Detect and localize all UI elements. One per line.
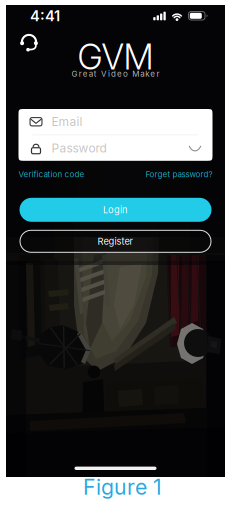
staticText: Login bbox=[103, 204, 128, 215]
button[interactable]: Verification code bbox=[18, 169, 84, 180]
staticText: Great Video Maker bbox=[72, 69, 159, 79]
button[interactable]: Customer support bbox=[18, 31, 40, 53]
staticText: 4:41 bbox=[30, 7, 60, 25]
staticText: Register bbox=[97, 236, 133, 247]
staticText: Figure 1 bbox=[83, 474, 162, 500]
staticText: Verification code bbox=[18, 169, 84, 179]
button[interactable]: Login bbox=[19, 198, 211, 222]
button[interactable]: Forget password? bbox=[145, 169, 212, 180]
staticText: Forget password? bbox=[145, 169, 212, 179]
button[interactable]: Register bbox=[19, 230, 211, 253]
button[interactable]: Show password bbox=[188, 143, 201, 153]
staticText: GVM bbox=[77, 36, 153, 78]
staticText: Email bbox=[51, 114, 82, 129]
staticText: Password bbox=[51, 141, 106, 155]
